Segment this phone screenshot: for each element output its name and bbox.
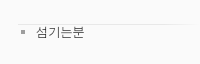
staticText: 섬기는분	[36, 24, 85, 40]
button[interactable]: 섬기는분	[0, 0, 200, 64]
